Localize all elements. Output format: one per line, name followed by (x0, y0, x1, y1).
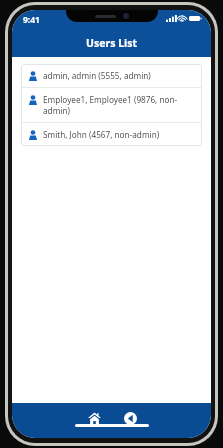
button[interactable]: Employee1, Employee1 (9876, non-admin) (21, 88, 202, 122)
button[interactable]: Smith, John (4567, non-admin) (21, 123, 202, 146)
button[interactable]: admin, admin (5555, admin) (21, 64, 202, 87)
staticText: 9:41 (23, 14, 40, 26)
button[interactable]: Home (82, 406, 106, 430)
staticText: Users List (86, 36, 138, 50)
staticText: Employee1, Employee1 (9876, non-admin) (43, 94, 194, 116)
staticText: admin, admin (5555, admin) (43, 70, 194, 81)
staticText: Smith, John (4567, non-admin) (43, 129, 194, 140)
button[interactable]: Back (118, 406, 142, 430)
